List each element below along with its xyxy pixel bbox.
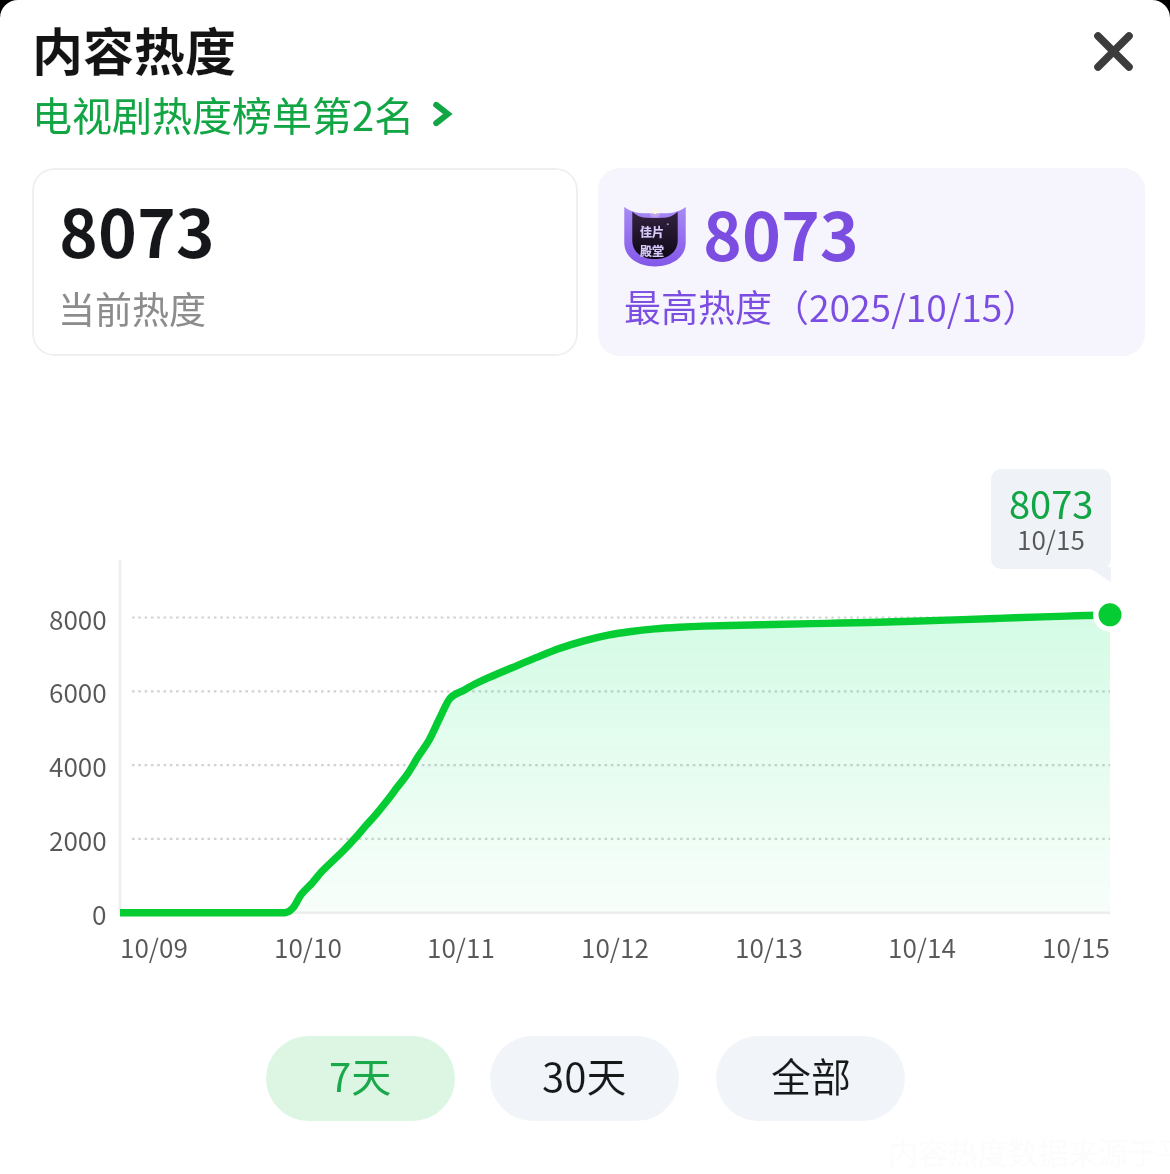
staticText: 6000 bbox=[49, 673, 107, 711]
staticText: 8073 bbox=[59, 181, 215, 277]
button[interactable]: 7天 bbox=[266, 1036, 455, 1121]
staticText: 30天 bbox=[542, 1046, 627, 1104]
staticText: 最高热度（2025/10/15） bbox=[624, 279, 1040, 333]
button[interactable]: 8073 bbox=[32, 168, 578, 356]
staticText: 殿堂 bbox=[640, 242, 665, 259]
button[interactable]: 全部 bbox=[716, 1036, 905, 1121]
staticText: 7天 bbox=[329, 1046, 392, 1104]
staticText: 全部 bbox=[771, 1046, 851, 1104]
staticText: 10/10 bbox=[274, 928, 342, 966]
staticText: 0 bbox=[92, 895, 107, 933]
staticText: 2000 bbox=[49, 821, 107, 859]
staticText: 当前热度 bbox=[58, 281, 206, 335]
staticText: 10/13 bbox=[735, 928, 803, 966]
staticText: 10/14 bbox=[888, 928, 956, 966]
button[interactable]: 30天 bbox=[490, 1036, 679, 1121]
staticText: 8073 bbox=[1009, 475, 1094, 530]
staticText: 10/15 bbox=[1042, 928, 1110, 966]
staticText: 内容热度 bbox=[32, 12, 237, 86]
staticText: 4000 bbox=[49, 747, 107, 785]
button[interactable]: Close bbox=[1067, 5, 1159, 97]
staticText: 8000 bbox=[49, 600, 107, 638]
button[interactable]: 佳片 bbox=[598, 168, 1145, 356]
button[interactable]: 电视剧热度榜单第2名 bbox=[32, 85, 459, 143]
staticText: 佳片 bbox=[640, 223, 665, 240]
staticText: 电视剧热度榜单第2名 bbox=[32, 85, 415, 143]
staticText: 8073 bbox=[703, 184, 859, 280]
staticText: 10/12 bbox=[581, 928, 649, 966]
staticText: 10/15 bbox=[1017, 520, 1085, 558]
staticText: 10/11 bbox=[427, 928, 495, 966]
staticText: 10/09 bbox=[120, 928, 188, 966]
